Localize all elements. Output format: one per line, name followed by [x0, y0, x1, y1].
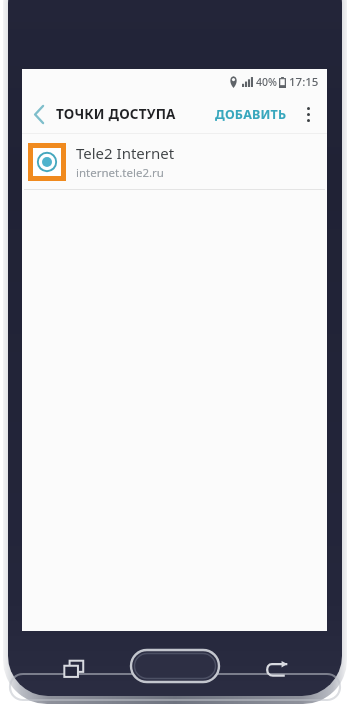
staticText: ДОБАВИТЬ — [215, 106, 287, 123]
button[interactable]: Back — [260, 653, 292, 685]
button[interactable]: Home — [131, 650, 219, 682]
staticText: 40% — [256, 75, 277, 89]
staticText: 17:15 — [289, 74, 319, 90]
button[interactable]: Recent apps — [58, 653, 90, 685]
button[interactable]: Tele2 Internet selected — [22, 134, 327, 189]
button[interactable]: ДОБАВИТЬ — [209, 100, 293, 129]
button[interactable]: Back — [22, 97, 56, 131]
staticText: Tele2 Internet — [76, 143, 175, 163]
staticText: ТОЧКИ ДОСТУПА — [56, 105, 176, 123]
staticText: internet.tele2.ru — [76, 165, 164, 181]
button[interactable]: More options — [295, 97, 321, 131]
button[interactable]: Tele2 Internet selected — [33, 148, 61, 176]
